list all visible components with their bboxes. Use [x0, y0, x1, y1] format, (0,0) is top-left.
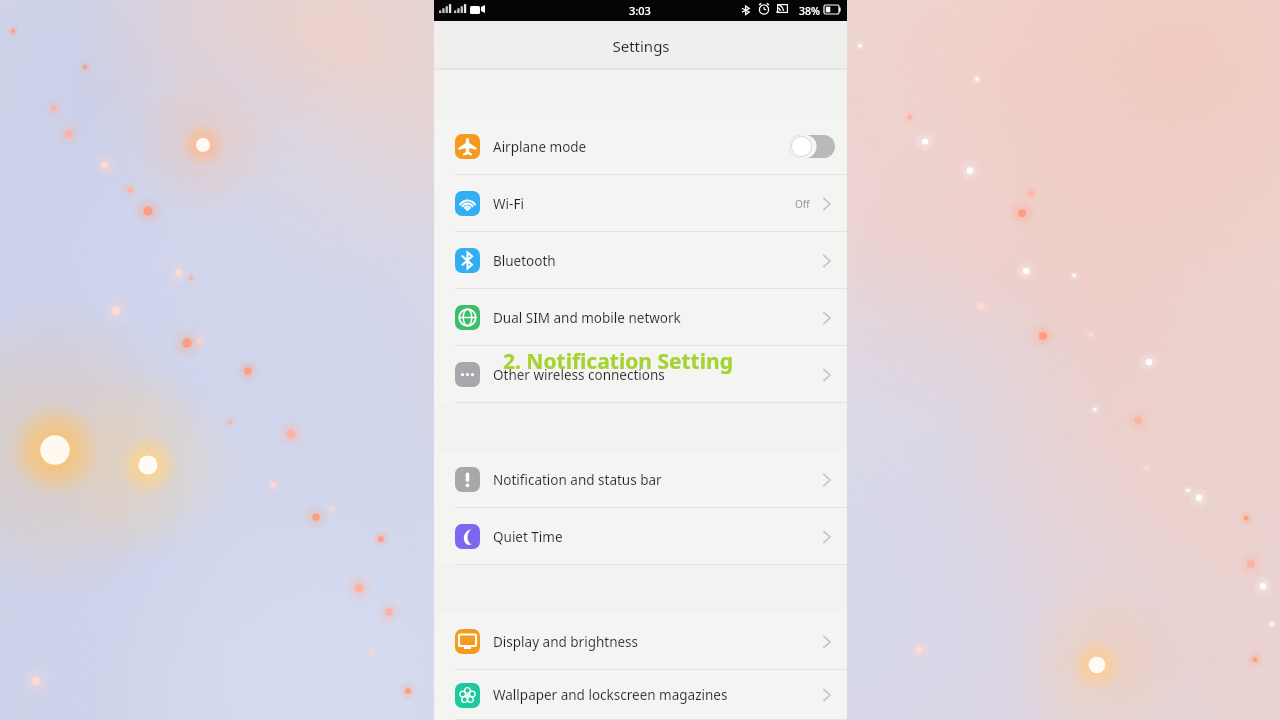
button[interactable]: Settings: [434, 21, 847, 70]
other: Display and brightness: [455, 629, 480, 654]
other: Other wireless connections: [455, 362, 480, 387]
button[interactable]: Display and brightness: [434, 613, 847, 670]
button[interactable]: Notification and status bar: [434, 451, 847, 508]
staticText: Display and brightness: [493, 633, 639, 651]
button[interactable]: Quiet Time: [434, 508, 847, 565]
button[interactable]: Other wireless connections: [434, 346, 847, 403]
staticText: Wi-Fi: [493, 195, 524, 213]
other: Quiet Time: [455, 524, 480, 549]
staticText: Notification and status bar: [493, 471, 662, 489]
button[interactable]: Wallpaper and lockscreen magazines: [434, 670, 847, 720]
staticText: Off: [795, 197, 810, 211]
staticText: Other wireless connections: [493, 366, 665, 384]
staticText: 2. Notification Setting: [503, 347, 733, 376]
button[interactable]: Wi-Fi: [434, 175, 847, 232]
staticText: 38%: [799, 4, 820, 18]
other: Dual SIM and mobile network: [455, 305, 480, 330]
staticText: Dual SIM and mobile network: [493, 309, 681, 327]
staticText: Settings: [612, 36, 670, 56]
button[interactable]: Dual SIM and mobile network: [434, 289, 847, 346]
button[interactable]: Airplane mode toggle: [789, 135, 835, 158]
staticText: Quiet Time: [493, 528, 563, 546]
other: Wallpaper and lockscreen magazines: [455, 683, 480, 708]
staticText: Wallpaper and lockscreen magazines: [493, 686, 728, 704]
staticText: Airplane mode: [493, 138, 587, 156]
other: Airplane mode: [455, 134, 480, 159]
other: Bluetooth: [455, 248, 480, 273]
staticText: Bluetooth: [493, 252, 556, 270]
button[interactable]: Airplane mode: [434, 118, 847, 175]
button[interactable]: Bluetooth: [434, 232, 847, 289]
other: Notification and status bar: [455, 467, 480, 492]
staticText: 3:03: [629, 3, 651, 18]
other: Wi-Fi: [455, 191, 480, 216]
